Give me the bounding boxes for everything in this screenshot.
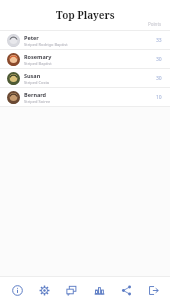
button[interactable]: Bernard: [0, 88, 170, 106]
staticText: Peter: [24, 34, 39, 41]
button[interactable]: Settings: [34, 280, 54, 300]
staticText: Points: [148, 21, 162, 27]
staticText: Striped Soiree: [24, 99, 51, 104]
staticText: 30: [156, 75, 162, 82]
button[interactable]: Log out: [143, 280, 163, 300]
staticText: Striped Costa: [24, 80, 50, 85]
staticText: 10: [156, 94, 162, 101]
button[interactable]: Share: [116, 280, 136, 300]
staticText: Striped Baptist: [24, 61, 52, 66]
staticText: Striped Rodrigo Baptist: [24, 42, 68, 47]
staticText: 30: [156, 56, 162, 63]
staticText: Rosemary: [24, 53, 52, 60]
button[interactable]: Rosemary: [0, 50, 170, 68]
button[interactable]: Statistics: [89, 280, 109, 300]
button[interactable]: Messages: [61, 280, 81, 300]
staticText: Bernard: [24, 91, 47, 98]
button[interactable]: Peter: [0, 31, 170, 49]
staticText: Top Players: [56, 8, 115, 22]
staticText: 33: [156, 37, 162, 44]
button[interactable]: Info: [7, 280, 27, 300]
staticText: Susan: [24, 72, 41, 79]
button[interactable]: Susan: [0, 69, 170, 87]
